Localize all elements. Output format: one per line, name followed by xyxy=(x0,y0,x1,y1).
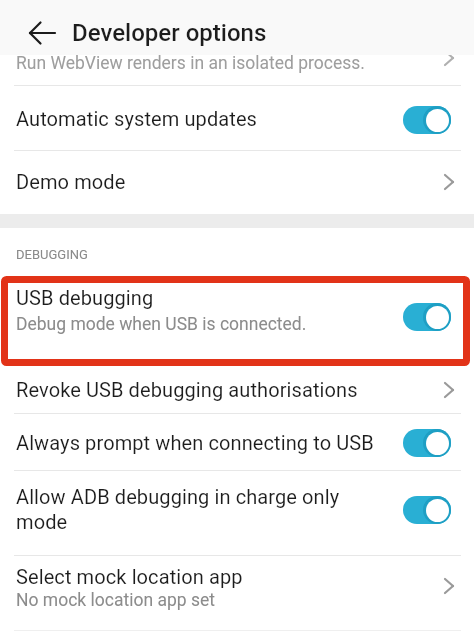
staticText: USB debugging xyxy=(16,286,154,309)
staticText: Revoke USB debugging authorisations xyxy=(16,378,358,401)
staticText: Debug mode when USB is connected. xyxy=(16,314,307,335)
staticText: Automatic system updates xyxy=(16,107,258,130)
staticText: No mock location app set xyxy=(16,590,215,611)
staticText: DEBUGGING xyxy=(16,247,88,262)
staticText: Always prompt when connecting to USB xyxy=(16,431,374,454)
staticText: Allow ADB debugging in charge only mode xyxy=(16,485,340,534)
staticText: Developer options xyxy=(72,19,267,47)
staticText: Run WebView renders in an isolated proce… xyxy=(16,53,365,74)
staticText: Select mock location app xyxy=(16,565,243,588)
staticText: Demo mode xyxy=(16,170,126,193)
